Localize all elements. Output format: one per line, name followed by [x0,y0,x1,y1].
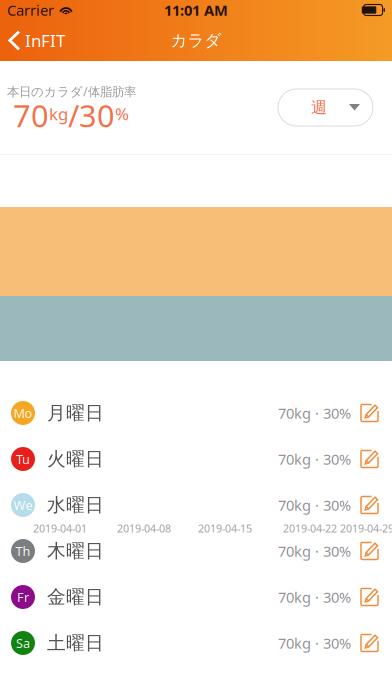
staticText: 金曜日 [47,585,104,609]
staticText: InFIT [25,29,65,52]
staticText: 70kg/30% [13,95,129,136]
staticText: 月曜日 [47,401,104,425]
button[interactable]: 週 [278,89,373,126]
staticText: 70kg · 30% [278,587,351,607]
staticText: カラダ [170,30,221,51]
button[interactable]: Mo [0,390,392,436]
staticText: Th [15,542,30,560]
staticText: 2019-04-22 [283,521,337,535]
staticText: 2019-04-15 [198,521,252,535]
staticText: Mo [13,404,32,422]
staticText: 70kg · 30% [278,403,351,423]
staticText: 木曜日 [47,539,104,563]
staticText: Fr [17,588,29,606]
staticText: 火曜日 [47,447,104,471]
staticText: Sa [16,634,30,652]
button[interactable]: Sa [0,620,392,666]
staticText: 70kg · 30% [278,541,351,561]
staticText: 2019-04-29 [340,521,392,535]
button[interactable]: InFIT [0,20,73,61]
staticText: 2019-04-08 [117,521,171,535]
staticText: 水曜日 [47,493,104,517]
staticText: 11:01 AM [164,0,228,20]
staticText: 70kg · 30% [278,449,351,469]
button[interactable]: We [0,482,392,528]
staticText: 本日のカラダ/体脂肪率 [7,83,136,100]
staticText: 70kg · 30% [278,633,351,653]
staticText: 2019-04-01 [33,521,87,535]
staticText: 土曜日 [47,631,104,655]
button[interactable]: Tu [0,436,392,482]
staticText: Carrier [7,0,54,20]
staticText: Tu [16,450,30,468]
button[interactable]: Fr [0,574,392,620]
staticText: We [13,496,32,514]
staticText: 70kg · 30% [278,495,351,515]
button[interactable]: Th [0,528,392,574]
staticText: 週 [311,97,327,118]
